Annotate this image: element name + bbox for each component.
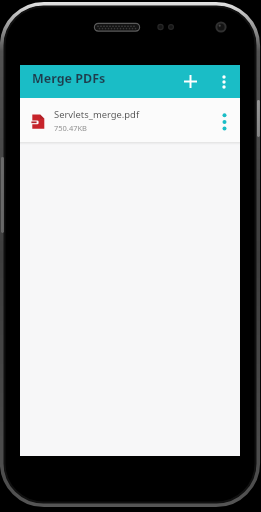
staticText: Servlets_merge.pdf bbox=[54, 108, 140, 121]
button[interactable] bbox=[214, 65, 234, 98]
staticText: Merge PDFs bbox=[32, 70, 106, 87]
button[interactable]: Servlets_merge.pdf bbox=[20, 98, 240, 142]
staticText: 750.47KB bbox=[54, 123, 87, 133]
button[interactable] bbox=[212, 98, 236, 142]
button[interactable] bbox=[177, 65, 203, 98]
